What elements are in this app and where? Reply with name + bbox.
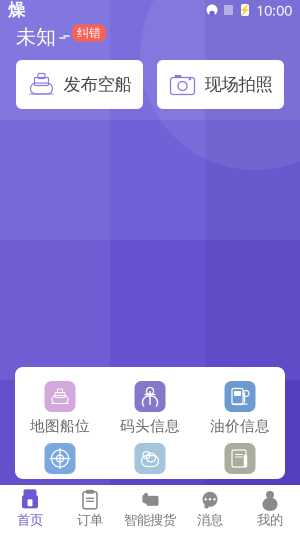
- staticText: 发布空船: [63, 74, 131, 95]
- staticText: 燥: [8, 0, 25, 21]
- staticText: 油价信息: [210, 417, 270, 435]
- staticText: 首页: [17, 512, 43, 528]
- button[interactable]: 智能搜货: [120, 485, 180, 533]
- button[interactable]: 发布空船: [16, 60, 143, 109]
- button[interactable]: 纠错: [72, 24, 106, 42]
- button[interactable]: 功能入口: [15, 443, 105, 474]
- staticText: 智能搜货: [124, 512, 176, 528]
- button[interactable]: 未知: [16, 21, 71, 53]
- button[interactable]: 功能入口: [195, 443, 285, 474]
- button[interactable]: 订单: [60, 485, 120, 533]
- button[interactable]: 首页: [0, 485, 60, 533]
- staticText: 我的: [257, 512, 283, 528]
- button[interactable]: 功能入口: [105, 443, 195, 474]
- staticText: 码头信息: [120, 417, 180, 435]
- staticText: 10:00: [256, 0, 292, 20]
- staticText: 消息: [197, 512, 223, 528]
- button[interactable]: 我的: [240, 485, 300, 533]
- staticText: 纠错: [77, 26, 101, 40]
- staticText: 未知: [16, 25, 56, 49]
- button[interactable]: 现场拍照: [157, 60, 284, 109]
- button[interactable]: 码头信息: [105, 381, 195, 435]
- button[interactable]: 油价信息: [195, 381, 285, 435]
- staticText: ⚡: [239, 5, 251, 15]
- button[interactable]: 地图船位: [15, 381, 105, 435]
- staticText: 现场拍照: [204, 74, 272, 95]
- staticText: 订单: [77, 512, 103, 528]
- staticText: 地图船位: [30, 417, 90, 435]
- button[interactable]: 消息: [180, 485, 240, 533]
